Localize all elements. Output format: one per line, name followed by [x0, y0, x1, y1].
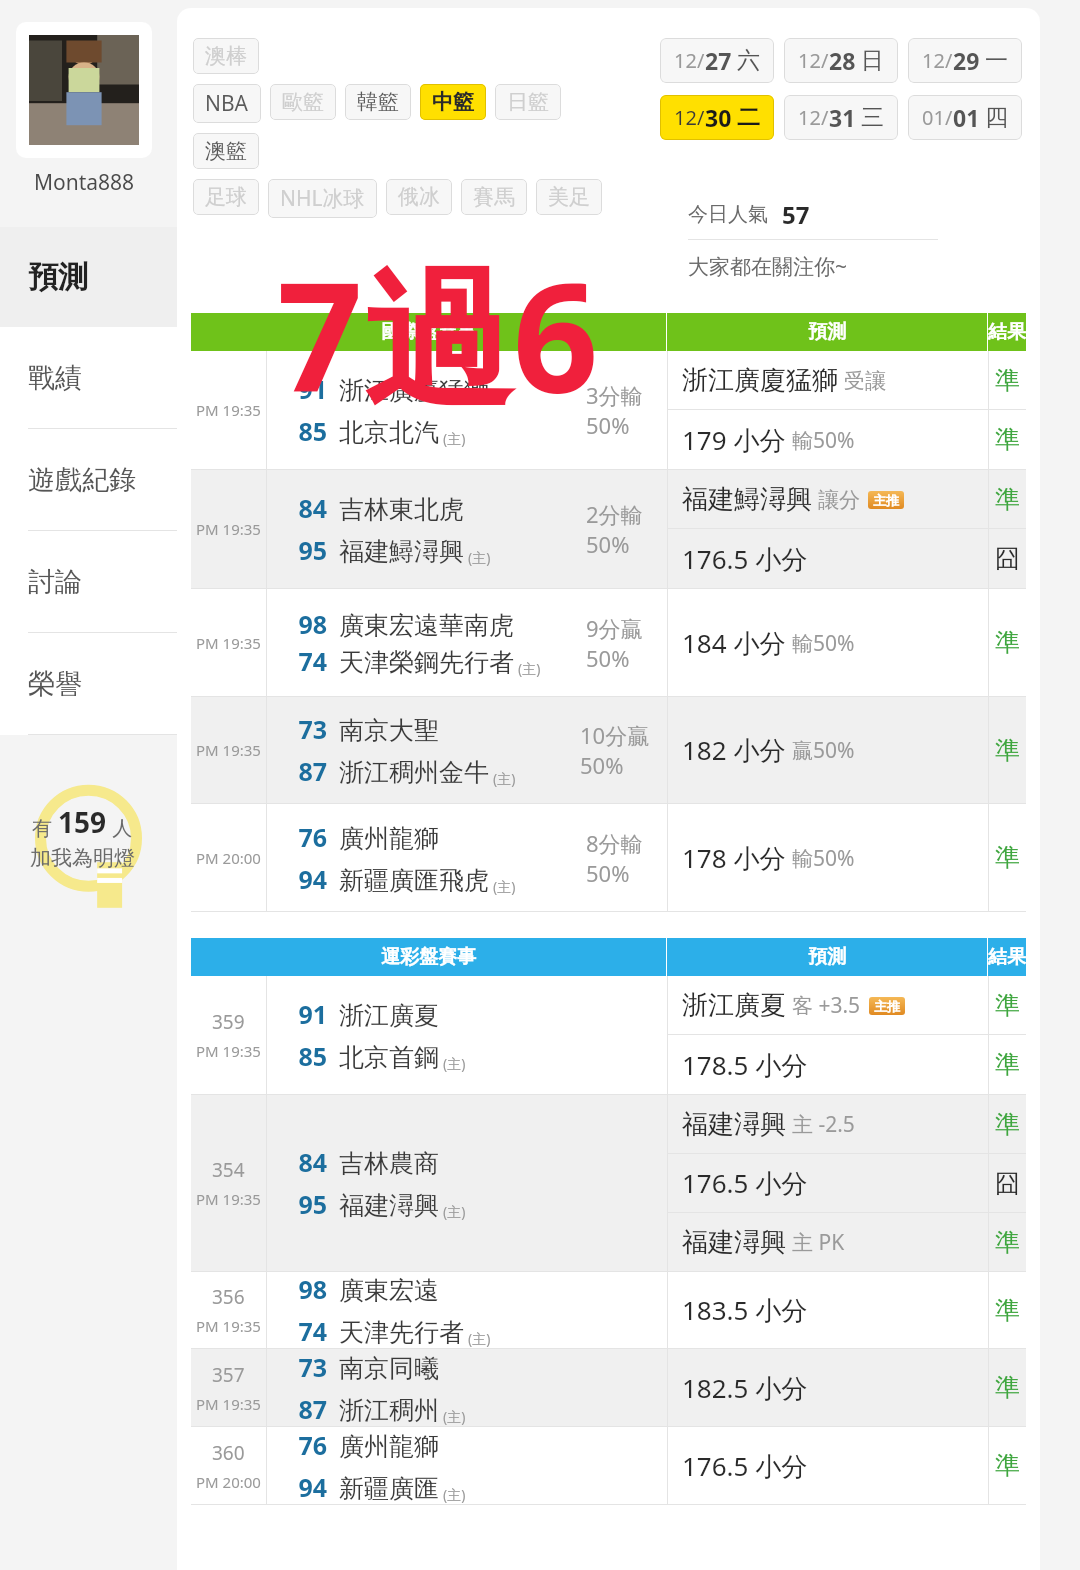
- staticText: 76: [285, 820, 327, 854]
- button[interactable]: 俄冰: [386, 179, 452, 215]
- staticText: 戰績: [28, 361, 82, 395]
- staticText: (主): [443, 1485, 466, 1504]
- button[interactable]: 12/: [784, 38, 898, 83]
- staticText: PM 19:35: [196, 1189, 261, 1209]
- button[interactable]: Profile avatar: [16, 22, 152, 158]
- button[interactable]: NBA: [193, 84, 261, 123]
- button[interactable]: 戰績: [0, 327, 177, 429]
- button[interactable]: 182 小分: [668, 697, 988, 803]
- staticText: 94: [285, 1470, 327, 1504]
- staticText: 01/: [922, 104, 953, 131]
- button[interactable]: 73: [267, 1349, 562, 1426]
- staticText: 50%: [586, 858, 630, 888]
- staticText: 10分贏: [580, 720, 650, 750]
- staticText: 354: [212, 1157, 245, 1183]
- staticText: 74: [285, 644, 327, 678]
- button[interactable]: 賽馬: [461, 179, 527, 215]
- staticText: 85: [285, 1039, 327, 1073]
- staticText: 囧: [995, 1168, 1020, 1199]
- staticText: 76: [285, 1428, 327, 1462]
- button[interactable]: 明燈: [0, 771, 177, 931]
- button[interactable]: 足球: [193, 179, 259, 215]
- button[interactable]: 12/: [660, 95, 774, 140]
- button[interactable]: 91: [267, 976, 562, 1094]
- button[interactable]: 178 小分: [668, 804, 988, 911]
- staticText: 179 小分: [682, 422, 786, 458]
- button[interactable]: 76: [267, 804, 562, 911]
- button[interactable]: 福建潯興: [668, 1213, 988, 1271]
- staticText: 南京同曦: [339, 1353, 439, 1384]
- staticText: PM 20:00: [196, 848, 261, 868]
- button[interactable]: 176.5 小分: [668, 1427, 988, 1504]
- staticText: 主推: [873, 492, 899, 508]
- staticText: 國際盤賽事: [381, 320, 476, 344]
- button[interactable]: 福建潯興: [668, 1095, 988, 1153]
- button[interactable]: 184 小分: [668, 589, 988, 696]
- staticText: 182 小分: [682, 732, 786, 768]
- button[interactable]: 中籃: [420, 84, 486, 120]
- button[interactable]: 98: [267, 1272, 562, 1348]
- staticText: 12/: [922, 47, 953, 74]
- staticText: 加我為明燈: [30, 845, 135, 871]
- staticText: 贏50%: [792, 736, 855, 765]
- button[interactable]: 浙江廣夏: [668, 976, 988, 1034]
- button[interactable]: 澳籃: [193, 133, 259, 169]
- staticText: 50%: [586, 410, 630, 440]
- staticText: 廣州龍獅: [339, 823, 439, 854]
- button[interactable]: 73: [267, 697, 562, 803]
- staticText: PM 19:35: [196, 1316, 261, 1336]
- button[interactable]: 84: [267, 470, 562, 588]
- staticText: 美足: [548, 184, 590, 210]
- button[interactable]: 98: [267, 589, 562, 696]
- button[interactable]: 韓籃: [345, 84, 411, 120]
- staticText: PM 19:35: [196, 1394, 261, 1414]
- staticText: 新疆廣匯: [339, 1473, 439, 1504]
- staticText: 浙江廣夏: [682, 989, 786, 1022]
- button[interactable]: 183.5 小分: [668, 1272, 988, 1348]
- button[interactable]: NHL冰球: [268, 179, 377, 218]
- staticText: 84: [285, 491, 327, 525]
- button[interactable]: 91: [267, 351, 562, 469]
- button[interactable]: 176.5 小分: [668, 529, 988, 588]
- button[interactable]: 176.5 小分: [668, 1154, 988, 1212]
- button[interactable]: 12/: [908, 38, 1022, 83]
- staticText: 新疆廣匯飛虎: [339, 865, 489, 896]
- staticText: (主): [518, 659, 541, 678]
- staticText: 176.5 小分: [682, 541, 808, 577]
- button[interactable]: 歐籃: [270, 84, 336, 120]
- button[interactable]: 預測: [0, 227, 177, 327]
- staticText: 廣東宏遠華南虎: [339, 610, 514, 641]
- staticText: 7過6: [277, 232, 599, 437]
- button[interactable]: 12/: [784, 95, 898, 140]
- staticText: (主): [493, 769, 516, 788]
- staticText: 50%: [586, 529, 630, 559]
- button[interactable]: 日籃: [495, 84, 561, 120]
- button[interactable]: 12/: [660, 38, 774, 83]
- button[interactable]: 美足: [536, 179, 602, 215]
- staticText: 357: [212, 1362, 245, 1388]
- button[interactable]: 浙江廣廈猛獅: [668, 351, 988, 409]
- button[interactable]: 178.5 小分: [668, 1035, 988, 1094]
- staticText: 吉林農商: [339, 1148, 439, 1179]
- button[interactable]: 福建鱘潯興: [668, 470, 988, 528]
- button[interactable]: 84: [267, 1095, 562, 1271]
- button[interactable]: 討論: [0, 531, 177, 633]
- staticText: 大家都在關注你~: [688, 252, 848, 281]
- staticText: 人: [107, 814, 133, 841]
- button[interactable]: 179 小分: [668, 410, 988, 469]
- staticText: 北京北汽: [339, 417, 439, 448]
- staticText: 天津先行者: [339, 1317, 464, 1348]
- button[interactable]: 76: [267, 1427, 562, 1504]
- button[interactable]: 182.5 小分: [668, 1349, 988, 1426]
- button[interactable]: 澳棒: [193, 38, 259, 74]
- staticText: Monta888: [34, 168, 135, 197]
- button[interactable]: 榮譽: [0, 633, 177, 735]
- button[interactable]: 遊戲紀錄: [0, 429, 177, 531]
- staticText: 福建潯興: [682, 1226, 786, 1259]
- staticText: 356: [212, 1284, 245, 1310]
- staticText: 中籃: [432, 89, 474, 115]
- staticText: 浙江廣廈猛獅: [339, 375, 489, 406]
- button[interactable]: 01/: [908, 95, 1022, 140]
- staticText: (主): [443, 1407, 466, 1426]
- staticText: 87: [285, 754, 327, 788]
